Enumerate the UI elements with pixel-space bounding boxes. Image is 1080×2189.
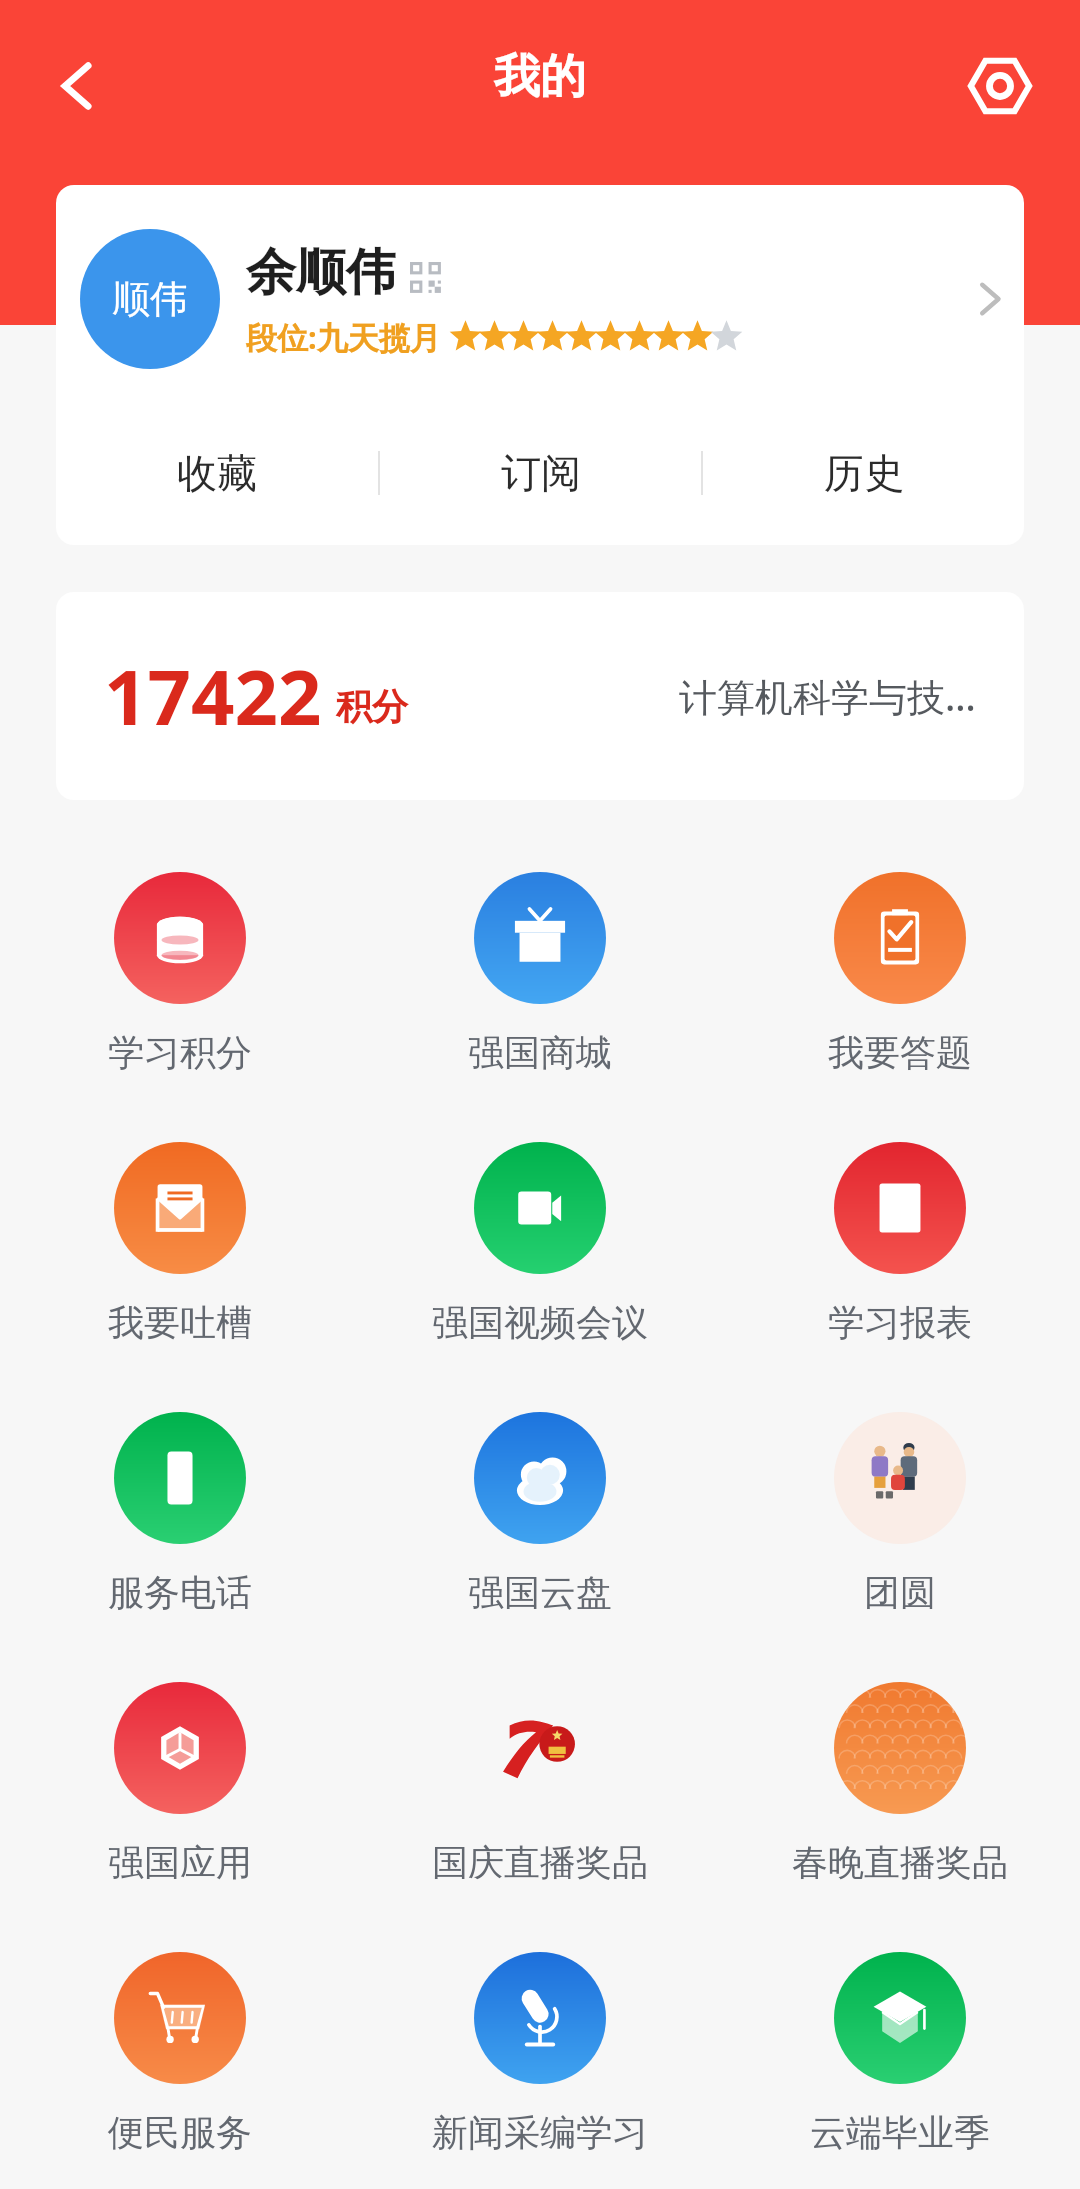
button[interactable]: 17422 — [56, 592, 1024, 800]
button[interactable]: 历史 — [703, 413, 1024, 533]
button[interactable]: 学习积分 — [0, 860, 360, 1130]
staticText: 积分 — [336, 684, 408, 729]
button[interactable]: 顺伟 — [56, 185, 1024, 413]
staticText: 新闻采编学习 — [432, 2110, 648, 2155]
button[interactable]: 收藏 — [56, 413, 378, 533]
staticText: 强国云盘 — [468, 1570, 612, 1615]
button[interactable]: 强国应用 — [0, 1670, 360, 1940]
staticText: 订阅 — [501, 448, 581, 498]
button[interactable]: 强国视频会议 — [360, 1130, 720, 1400]
button[interactable]: QR code — [410, 262, 444, 296]
staticText: 我要吐槽 — [108, 1300, 252, 1345]
button[interactable]: 强国云盘 — [360, 1400, 720, 1670]
staticText: 余顺伟 — [246, 241, 396, 304]
staticText: 学习报表 — [828, 1300, 972, 1345]
staticText: 学习积分 — [108, 1030, 252, 1075]
button[interactable]: 学习报表 — [720, 1130, 1080, 1400]
staticText: 收藏 — [177, 448, 257, 498]
staticText: 云端毕业季 — [810, 2110, 990, 2155]
button[interactable]: 新闻采编学习 — [360, 1940, 720, 2189]
button[interactable]: 订阅 — [380, 413, 701, 533]
staticText: 团圆 — [864, 1570, 936, 1615]
button[interactable]: Settings — [952, 38, 1048, 134]
button[interactable]: 团圆 — [720, 1400, 1080, 1670]
staticText: 计算机科学与技… — [679, 670, 976, 722]
staticText: 17422 — [104, 644, 322, 748]
staticText: 服务电话 — [108, 1570, 252, 1615]
button[interactable]: 我要答题 — [720, 860, 1080, 1130]
button[interactable]: 云端毕业季 — [720, 1940, 1080, 2189]
staticText: 我要答题 — [828, 1030, 972, 1075]
staticText: 春晚直播奖品 — [792, 1840, 1008, 1885]
staticText: 段位:九天揽月 — [246, 316, 441, 358]
button[interactable]: 便民服务 — [0, 1940, 360, 2189]
button[interactable]: 国庆直播奖品 — [360, 1670, 720, 1940]
button[interactable]: Back — [30, 38, 126, 134]
staticText: 我的 — [494, 48, 586, 106]
staticText: 强国商城 — [468, 1030, 612, 1075]
staticText: 便民服务 — [108, 2110, 252, 2155]
button[interactable]: 春晚直播奖品 — [720, 1670, 1080, 1940]
staticText: 历史 — [824, 448, 904, 498]
button[interactable]: 强国商城 — [360, 860, 720, 1130]
button[interactable]: 我要吐槽 — [0, 1130, 360, 1400]
staticText: 国庆直播奖品 — [432, 1840, 648, 1885]
staticText: 强国视频会议 — [432, 1300, 648, 1345]
button[interactable]: 服务电话 — [0, 1400, 360, 1670]
staticText: 强国应用 — [108, 1840, 252, 1885]
staticText: 顺伟 — [112, 275, 188, 323]
